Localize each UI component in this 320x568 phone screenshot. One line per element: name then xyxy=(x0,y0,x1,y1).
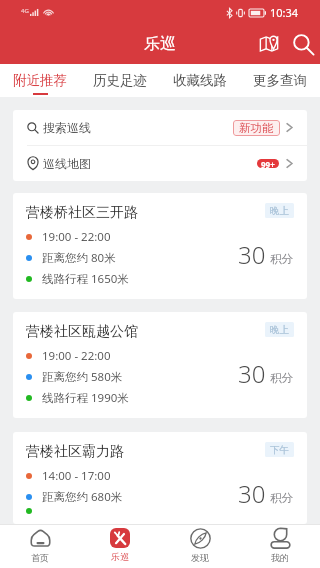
button[interactable]: 历史足迹 xyxy=(80,64,160,97)
staticText: 线路行程 1650米 xyxy=(42,271,129,287)
staticText: 附近推荐 xyxy=(13,72,67,89)
button[interactable]: 营楼社区霸力路 xyxy=(13,432,307,524)
staticText: 距离您约 680米 xyxy=(42,489,123,505)
staticText: 收藏线路 xyxy=(173,72,227,89)
staticText: 积分 xyxy=(270,371,293,385)
staticText: 下午 xyxy=(270,444,289,456)
button[interactable]: 巡线地图 xyxy=(13,146,307,181)
staticText: 晚上 xyxy=(270,324,289,336)
staticText: 99+ xyxy=(261,159,275,168)
staticText: 首页 xyxy=(31,552,49,563)
staticText: 营楼社区霸力路 xyxy=(26,443,124,461)
button[interactable]: 乐巡 xyxy=(80,524,160,568)
staticText: 发现 xyxy=(191,552,209,563)
staticText: 更多查询 xyxy=(253,72,307,89)
staticText: 19:00 - 22:00 xyxy=(42,229,111,245)
staticText: 新功能 xyxy=(239,121,274,135)
staticText: 积分 xyxy=(270,491,293,505)
button[interactable]: 我的 xyxy=(240,524,320,568)
button[interactable]: 更多查询 xyxy=(240,64,320,97)
staticText: 10:34 xyxy=(270,5,299,20)
staticText: 距离您约 80米 xyxy=(42,250,116,266)
staticText: 乐巡 xyxy=(144,34,176,54)
staticText: 19:00 - 22:00 xyxy=(42,348,111,364)
staticText: 积分 xyxy=(270,252,293,266)
staticText: 30 xyxy=(238,357,266,390)
staticText: 营楼社区瓯越公馆 xyxy=(26,323,138,341)
button[interactable]: 收藏线路 xyxy=(160,64,240,97)
staticText: 4G xyxy=(21,7,29,15)
staticText: 14:00 - 17:00 xyxy=(42,468,111,484)
button[interactable]: Map xyxy=(252,24,286,64)
staticText: 搜索巡线 xyxy=(43,120,91,135)
staticText: 我的 xyxy=(271,552,289,563)
staticText: 营楼桥社区三开路 xyxy=(26,204,138,222)
staticText: 30 xyxy=(238,238,266,271)
staticText: 线路行程 1990米 xyxy=(42,390,129,406)
staticText: 巡线地图 xyxy=(43,156,91,171)
staticText: 晚上 xyxy=(270,205,289,217)
button[interactable]: 搜索巡线 xyxy=(13,110,307,145)
staticText: 距离您约 580米 xyxy=(42,369,123,385)
button[interactable]: 首页 xyxy=(0,524,80,568)
button[interactable]: 营楼桥社区三开路 xyxy=(13,193,307,299)
staticText: 历史足迹 xyxy=(93,72,147,89)
staticText: 30 xyxy=(238,477,266,510)
button[interactable]: Search xyxy=(286,24,320,64)
staticText: 乐巡 xyxy=(111,551,129,562)
button[interactable]: 附近推荐 xyxy=(0,64,80,97)
button[interactable]: 发现 xyxy=(160,524,240,568)
button[interactable]: 营楼社区瓯越公馆 xyxy=(13,312,307,418)
